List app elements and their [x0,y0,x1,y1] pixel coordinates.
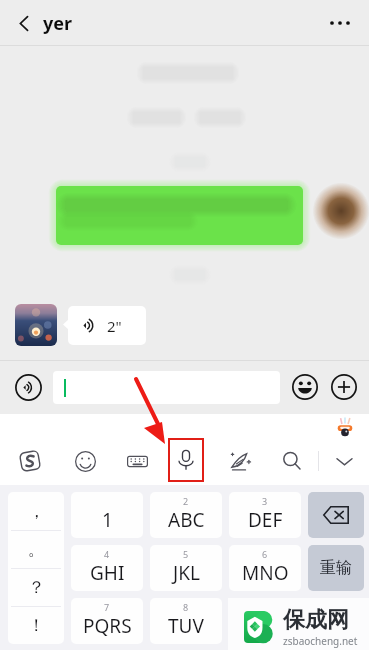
button[interactable]: More functions [329,372,359,402]
button[interactable]: Back [7,6,41,40]
button[interactable] [308,492,364,538]
staticText: 2" [107,316,122,336]
staticText: ！ [28,615,45,636]
staticText: ？ [28,577,45,598]
staticText: JKL [173,560,200,586]
staticText: DEF [248,507,283,533]
staticText: ， [28,501,45,522]
button[interactable]: 重输 [308,545,364,591]
button[interactable]: 5 [150,545,222,591]
staticText: 2 [183,495,189,507]
staticText: 3 [262,495,268,507]
staticText: 保成网 [283,606,349,634]
button[interactable]: Hide keyboard [319,437,369,485]
staticText: GHI [90,560,125,586]
button[interactable]: Contact avatar [319,185,365,237]
button[interactable]: Handwriting [214,437,266,485]
staticText: 8 [183,601,189,613]
staticText: 1 [102,507,113,533]
button[interactable]: 8 [150,598,222,644]
button[interactable]: 。 [8,531,64,568]
staticText: ABC [168,507,205,533]
staticText: zsbaocheng.net [283,634,358,648]
button[interactable] [53,371,280,404]
staticText: 重输 [320,558,352,578]
button[interactable]: Assistant [334,417,356,439]
staticText: 7 [104,601,110,613]
staticText: 6 [262,548,268,560]
button[interactable]: 7 [71,598,143,644]
button[interactable]: 6 [229,545,301,591]
staticText: 9 [262,601,268,613]
button[interactable]: 2" [68,306,146,345]
button[interactable]: ！ [8,607,64,644]
button[interactable]: 1 [71,492,143,538]
button[interactable]: 3 [229,492,301,538]
button[interactable]: Sender avatar [15,304,57,346]
staticText: PQRS [83,613,132,639]
button[interactable]: Voice input [13,372,43,402]
button[interactable]: Emoji [60,437,110,485]
staticText: 。 [28,539,45,560]
button[interactable] [56,186,303,245]
staticText: 5 [183,548,189,560]
button[interactable]: 9 [229,598,301,644]
button[interactable] [308,598,364,644]
staticText: TUV [168,613,204,639]
button[interactable]: Search [266,437,318,485]
button[interactable]: Voice input [164,437,214,485]
staticText: 4 [104,548,110,560]
button[interactable]: Sogou input [0,437,60,485]
button[interactable]: ？ [8,569,64,606]
button[interactable]: More options [321,4,359,42]
staticText: WXYZ [240,613,291,639]
button[interactable]: 4 [71,545,143,591]
button[interactable]: 2 [150,492,222,538]
button[interactable]: ， [8,492,64,530]
button[interactable]: Emoji [290,372,320,402]
staticText: MNO [242,560,289,586]
staticText: yer [43,11,73,36]
button[interactable]: Keyboard layout [110,437,164,485]
